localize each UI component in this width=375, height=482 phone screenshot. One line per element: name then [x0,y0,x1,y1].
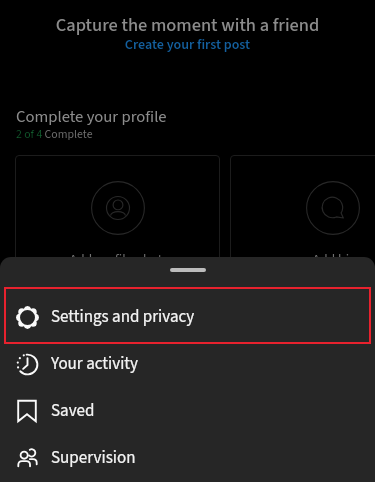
staticText: Your activity [51,352,139,376]
staticText: Complete your profile [16,105,167,129]
staticText: 2 of 4 Complete [16,126,93,143]
button[interactable]: Add bio [230,155,375,275]
button[interactable]: Add profile photo [15,155,220,275]
button[interactable]: Create your first post [0,35,375,55]
staticText: Add bio [232,250,375,270]
staticText: Capture the moment with a friend [0,12,375,38]
button[interactable]: Settings and privacy [0,293,375,340]
button[interactable]: Supervision [0,434,375,481]
staticText: Supervision [51,446,136,470]
button[interactable]: Saved [0,387,375,434]
staticText: Add profile photo [17,250,222,270]
staticText: Settings and privacy [51,305,195,329]
button[interactable]: Your activity [0,340,375,387]
staticText: Saved [51,399,95,423]
other: Settings and privacy [16,306,39,329]
